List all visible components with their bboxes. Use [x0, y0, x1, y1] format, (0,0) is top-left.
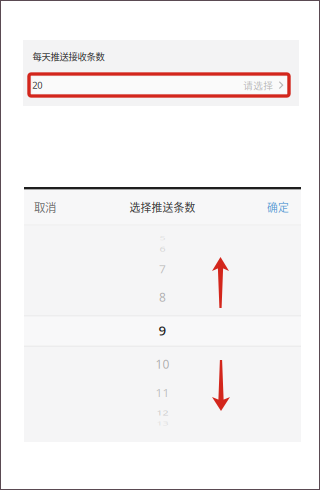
staticText: 20: [32, 79, 42, 91]
button[interactable]: 确定: [255, 190, 301, 224]
staticText: 每天推送接收条数: [33, 49, 105, 63]
staticText: 10: [155, 356, 169, 372]
staticText: 12: [156, 406, 168, 420]
staticText: 11: [155, 385, 169, 401]
staticText: 请选择: [243, 78, 273, 92]
button[interactable]: 20: [32, 77, 287, 94]
staticText: 确定: [267, 199, 289, 215]
staticText: 7: [159, 261, 166, 277]
staticText: 6: [159, 242, 165, 256]
staticText: 8: [159, 289, 166, 305]
staticText: 取消: [34, 199, 56, 215]
staticText: 13: [156, 417, 168, 431]
staticText: 5: [159, 231, 165, 246]
staticText: 选择推送条数: [129, 199, 195, 215]
staticText: 9: [158, 321, 166, 339]
button[interactable]: 取消: [24, 190, 70, 224]
